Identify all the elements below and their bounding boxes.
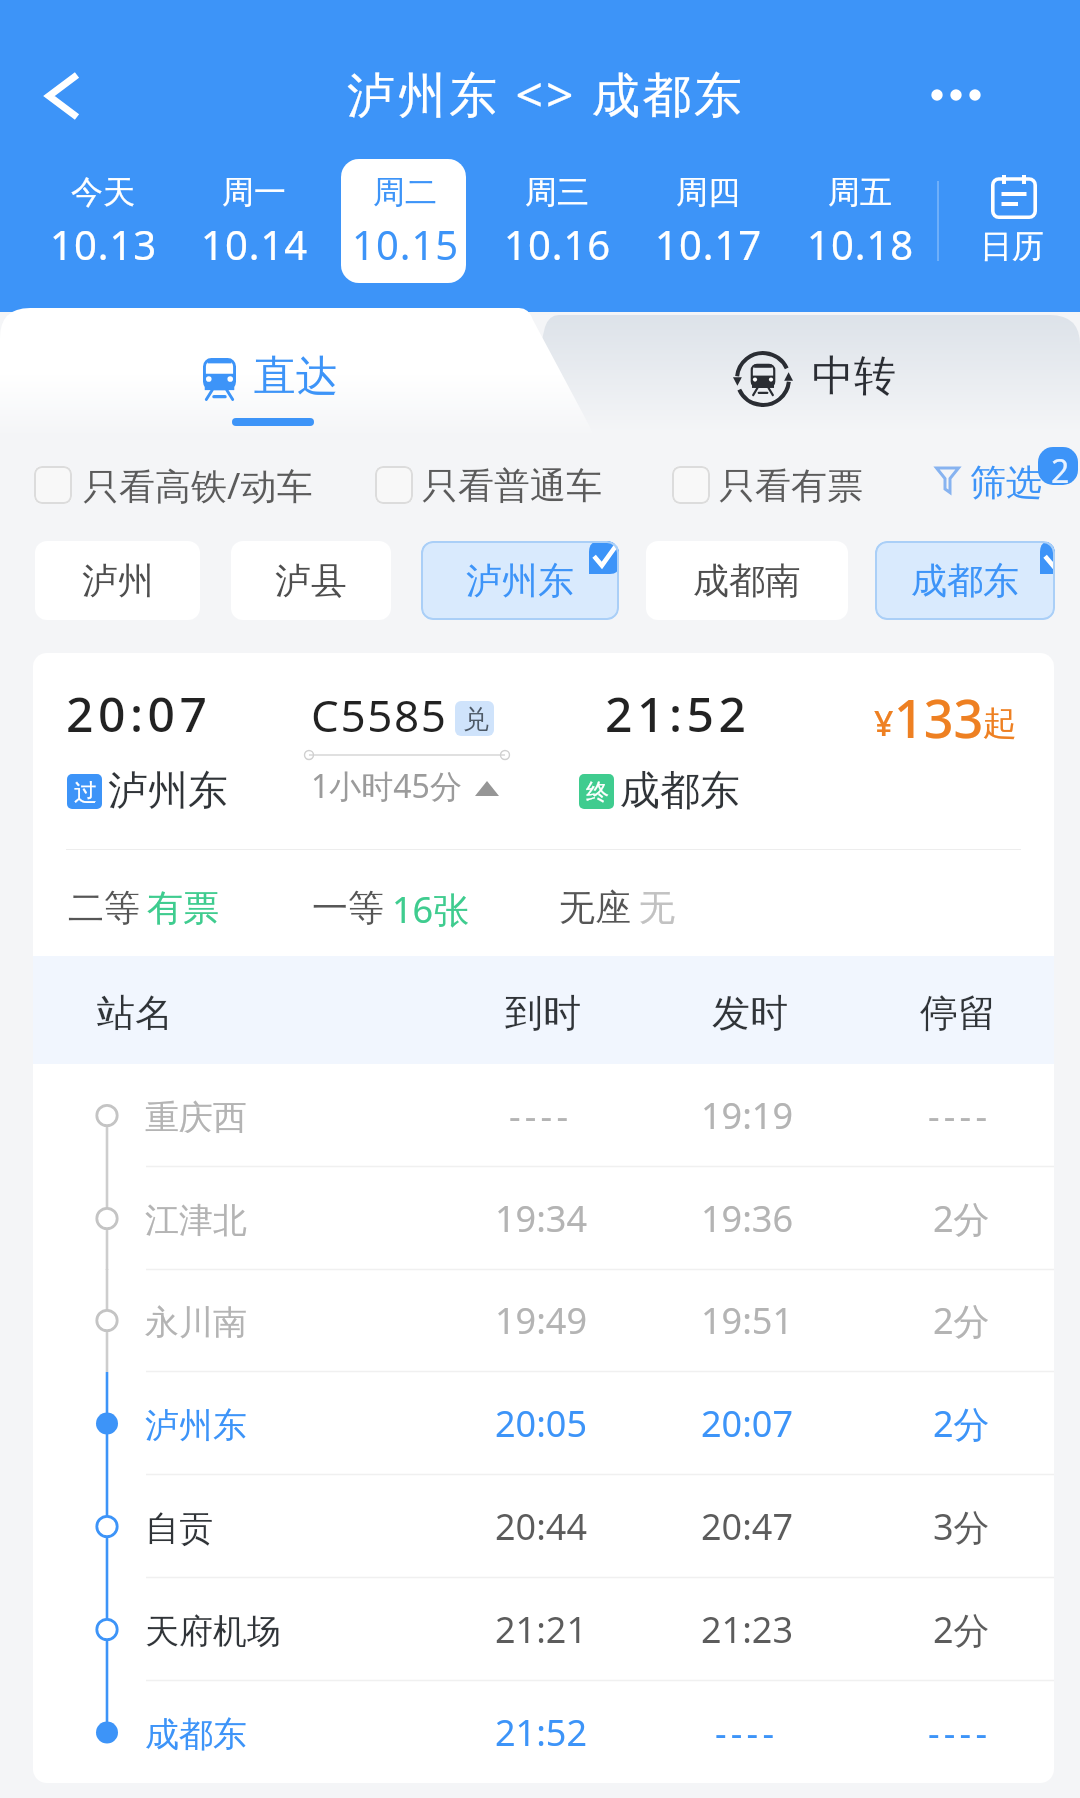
button[interactable]: 今天 <box>39 159 164 283</box>
staticText: 周四 <box>676 172 740 212</box>
staticText: 只看高铁/动车 <box>83 461 313 510</box>
staticText: 21:52 <box>495 1708 588 1757</box>
staticText: 21:52 <box>605 681 751 746</box>
button[interactable]: 只看普通车 <box>369 455 610 515</box>
staticText: 10.17 <box>655 217 763 271</box>
staticText: 20:07 <box>66 681 212 746</box>
staticText: 起 <box>983 702 1017 745</box>
staticText: 20:07 <box>701 1399 794 1448</box>
button[interactable]: 周四 <box>644 159 769 283</box>
staticText: ---- <box>715 1708 779 1757</box>
staticText: 19:34 <box>495 1194 588 1243</box>
staticText: 日历 <box>980 226 1044 266</box>
staticText: 21:21 <box>495 1605 588 1654</box>
staticText: 成都东 <box>620 765 740 815</box>
staticText: 16张 <box>392 885 470 934</box>
staticText: 泸州 <box>82 558 154 603</box>
staticText: 19:49 <box>495 1296 588 1345</box>
staticText: 有票 <box>147 885 219 930</box>
button[interactable]: 成都南 <box>646 541 848 620</box>
staticText: 成都南 <box>693 558 801 603</box>
staticText: 20:05 <box>495 1399 588 1448</box>
staticText: 停留 <box>920 989 996 1037</box>
staticText: 今天 <box>71 172 135 212</box>
staticText: 10.14 <box>201 217 309 271</box>
staticText: 江津北 <box>145 1199 247 1242</box>
staticText: 泸州东 <> 成都东 <box>347 61 745 127</box>
staticText: 2分 <box>933 1296 990 1345</box>
staticText: 到时 <box>505 989 581 1037</box>
staticText: 永川南 <box>145 1301 247 1344</box>
staticText: 中转 <box>812 350 896 403</box>
button[interactable]: 泸州东 <box>421 541 619 620</box>
button[interactable]: 筛选 <box>930 455 1045 511</box>
staticText: 2分 <box>933 1194 990 1243</box>
staticText: 10.16 <box>504 217 612 271</box>
button[interactable]: 周三 <box>493 159 618 283</box>
staticText: 2分 <box>933 1605 990 1654</box>
staticText: 筛选 <box>970 460 1042 505</box>
staticText: 站名 <box>97 989 173 1037</box>
staticText: 21:23 <box>701 1605 794 1654</box>
staticText: C5585 <box>311 685 448 745</box>
button[interactable]: 只看高铁/动车 <box>28 455 321 515</box>
staticText: 泸县 <box>275 558 347 603</box>
staticText: 自贡 <box>145 1507 213 1550</box>
button[interactable]: 只看有票 <box>666 455 871 515</box>
staticText: 直达 <box>254 350 338 403</box>
staticText: 成都东 <box>145 1713 247 1756</box>
button[interactable]: 泸州 <box>35 541 200 620</box>
button[interactable]: Calendar <box>953 159 1073 283</box>
staticText: 成都东 <box>911 558 1019 603</box>
staticText: ¥ <box>874 700 894 746</box>
staticText: ---- <box>509 1091 573 1140</box>
staticText: 无座 <box>559 885 631 930</box>
staticText: 泸州东 <box>466 558 574 603</box>
button[interactable]: 20:07 <box>33 653 1054 1783</box>
button[interactable]: 周一 <box>190 159 315 283</box>
button[interactable]: 泸县 <box>231 541 391 620</box>
staticText: 只看有票 <box>719 463 863 508</box>
staticText: 周二 <box>373 172 437 212</box>
staticText: 终 <box>586 778 609 807</box>
staticText: 过 <box>74 778 97 807</box>
staticText: 1小时45分 <box>311 764 462 808</box>
staticText: 19:19 <box>701 1091 794 1140</box>
staticText: 周三 <box>525 172 589 212</box>
staticText: 一等 <box>312 885 384 930</box>
staticText: 只看普通车 <box>422 463 602 508</box>
button[interactable]: 周二 <box>341 159 466 283</box>
staticText: 10.15 <box>352 217 460 271</box>
staticText: 10.13 <box>50 217 158 271</box>
button[interactable]: Back <box>13 46 113 146</box>
button[interactable]: 成都东 <box>875 541 1055 620</box>
staticText: 2分 <box>933 1399 990 1448</box>
staticText: 重庆西 <box>145 1096 247 1139</box>
staticText: 泸州东 <box>145 1404 247 1447</box>
staticText: 无 <box>639 885 675 930</box>
staticText: 19:51 <box>701 1296 794 1345</box>
staticText: 19:36 <box>701 1194 794 1243</box>
staticText: 20:47 <box>701 1502 794 1551</box>
staticText: 20:44 <box>495 1502 588 1551</box>
staticText: 10.18 <box>807 217 915 271</box>
staticText: 发时 <box>712 989 788 1037</box>
staticText: 兑 <box>463 703 489 736</box>
staticText: ---- <box>928 1091 992 1140</box>
button[interactable]: 中转 <box>660 308 990 440</box>
staticText: 133 <box>894 682 984 753</box>
staticText: 泸州东 <box>108 765 228 815</box>
button[interactable]: More options <box>896 45 1016 145</box>
staticText: 2 <box>1051 449 1070 485</box>
staticText: 周一 <box>222 172 286 212</box>
staticText: 天府机场 <box>145 1610 281 1653</box>
staticText: ---- <box>928 1708 992 1757</box>
button[interactable]: 直达 <box>110 308 440 440</box>
staticText: 二等 <box>68 885 140 930</box>
staticText: 3分 <box>933 1502 990 1551</box>
staticText: 周五 <box>828 172 892 212</box>
button[interactable]: 周五 <box>796 159 921 283</box>
